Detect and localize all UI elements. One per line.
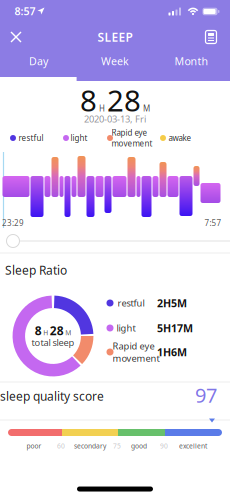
staticText: 5H17M bbox=[157, 321, 193, 335]
staticText: Rapid eye bbox=[111, 127, 147, 138]
staticText: excellent bbox=[179, 442, 207, 450]
staticText: poor bbox=[26, 442, 41, 450]
staticText: 2020-03-13, Fri bbox=[84, 113, 146, 125]
staticText: restful bbox=[18, 133, 43, 143]
staticText: 75 bbox=[113, 442, 121, 450]
staticText: M bbox=[143, 103, 150, 114]
staticText: 60 bbox=[57, 442, 65, 450]
staticText: Day bbox=[29, 54, 48, 68]
staticText: Month bbox=[175, 54, 209, 68]
staticText: Rapid eye bbox=[112, 340, 154, 352]
staticText: movement bbox=[111, 138, 152, 149]
button[interactable]: Sleep report bbox=[197, 23, 225, 51]
staticText: 8 bbox=[80, 80, 97, 119]
button[interactable]: Close bbox=[2, 23, 30, 51]
staticText: 1H6M bbox=[157, 345, 187, 359]
staticText: SLEEP bbox=[97, 29, 132, 45]
staticText: secondary bbox=[74, 442, 106, 450]
button[interactable]: Month bbox=[153, 49, 230, 73]
button[interactable]: Week bbox=[77, 49, 153, 73]
staticText: 97 bbox=[195, 382, 217, 408]
button[interactable]: Scrub sleep timeline bbox=[6, 234, 19, 247]
staticText: 28 bbox=[50, 322, 64, 338]
staticText: light bbox=[116, 322, 135, 334]
staticText: H bbox=[99, 103, 105, 114]
staticText: 7:57 bbox=[204, 218, 221, 228]
staticText: movement bbox=[112, 352, 159, 364]
staticText: 28 bbox=[107, 80, 141, 119]
staticText: M bbox=[65, 328, 71, 337]
staticText: restful bbox=[117, 297, 144, 309]
staticText: light bbox=[70, 133, 87, 143]
staticText: 8:57 bbox=[14, 4, 35, 18]
staticText: awake bbox=[168, 133, 191, 143]
staticText: 2H5M bbox=[157, 296, 187, 310]
staticText: sleep quality score bbox=[0, 388, 104, 404]
staticText: 90 bbox=[160, 442, 168, 450]
button[interactable]: Day bbox=[0, 49, 77, 73]
staticText: Sleep Ratio bbox=[5, 262, 67, 278]
staticText: H bbox=[43, 328, 48, 337]
staticText: Week bbox=[101, 54, 129, 68]
staticText: 8 bbox=[35, 322, 42, 338]
staticText: 23:29 bbox=[2, 218, 24, 228]
staticText: total sleep bbox=[31, 336, 74, 349]
staticText: good bbox=[131, 442, 147, 450]
